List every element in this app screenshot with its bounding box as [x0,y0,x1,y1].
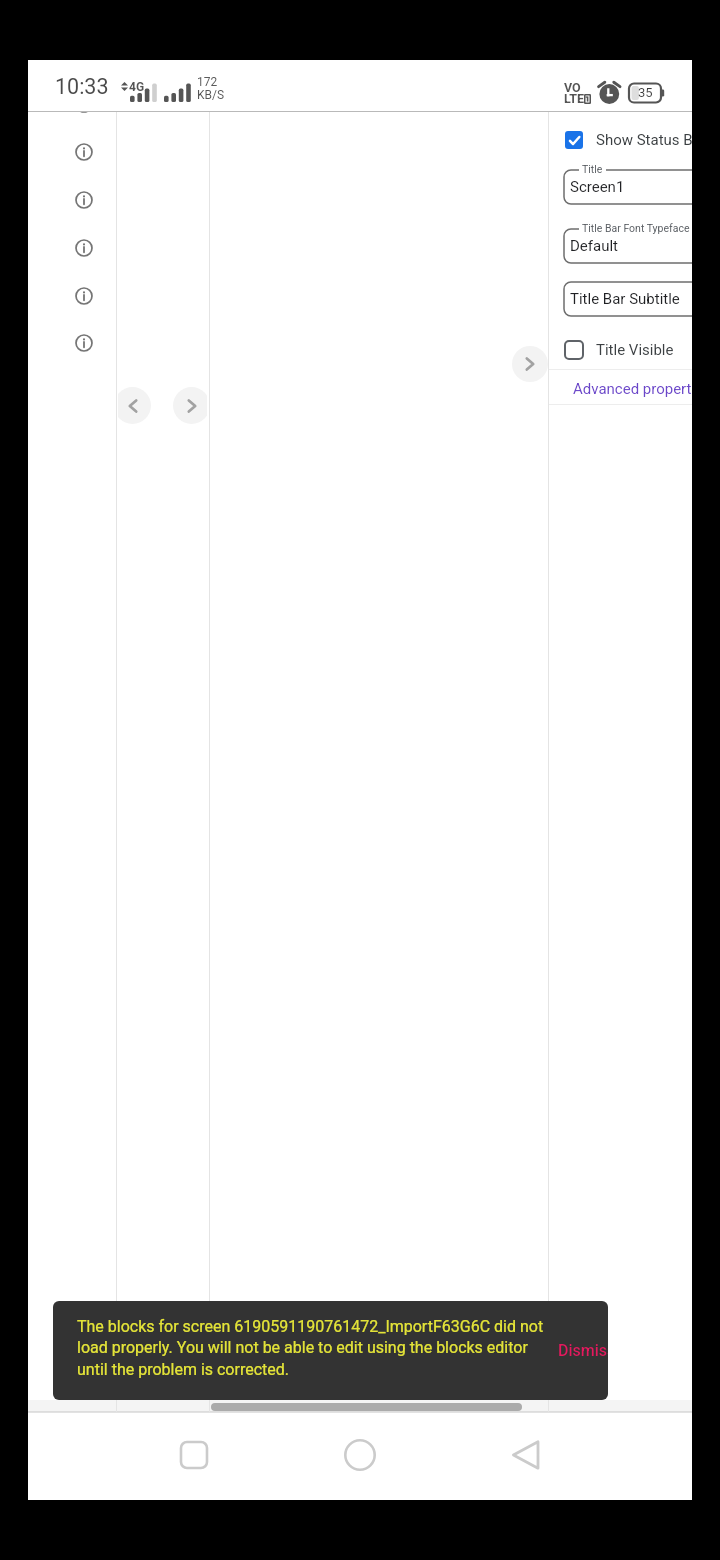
staticText: KB/S [197,88,225,102]
staticText: The blocks for screen 6190591190761472_I… [77,1317,544,1379]
staticText: 4G [129,80,145,94]
staticText: LTE [564,91,585,106]
button[interactable]: Dismiss [558,1341,608,1360]
staticText: VO [564,80,581,95]
button[interactable]: Next [173,387,207,424]
staticText: Default [570,237,618,255]
staticText: 10:33 [55,74,109,99]
staticText: 172 [197,75,218,89]
staticText: Dismiss [558,1341,608,1360]
staticText: Screen1 [570,178,625,196]
button[interactable]: Info [71,112,97,117]
button[interactable]: Info [71,139,97,165]
staticText: Title [582,163,603,175]
staticText: 35 [638,85,653,100]
button[interactable]: Expand panel [512,346,548,382]
staticText: Advanced properties [573,380,692,398]
button[interactable]: Back [498,1427,554,1483]
staticText: Show Status Bar [596,131,692,149]
button[interactable]: Info [71,187,97,213]
button[interactable]: Advanced properties [549,373,692,404]
button[interactable]: Previous [118,387,151,424]
button[interactable]: Info [71,330,97,356]
button[interactable]: Show Status Bar [549,124,692,156]
staticText: Title Bar Font Typeface [582,222,690,234]
button[interactable]: Info [71,235,97,261]
button[interactable]: Title Visible [549,334,692,366]
staticText: Title Visible [596,341,674,359]
button[interactable]: Info [71,283,97,309]
staticText: Title Bar Subtitle [570,290,680,308]
button[interactable]: Home [332,1427,388,1483]
button[interactable]: Recents [166,1427,222,1483]
